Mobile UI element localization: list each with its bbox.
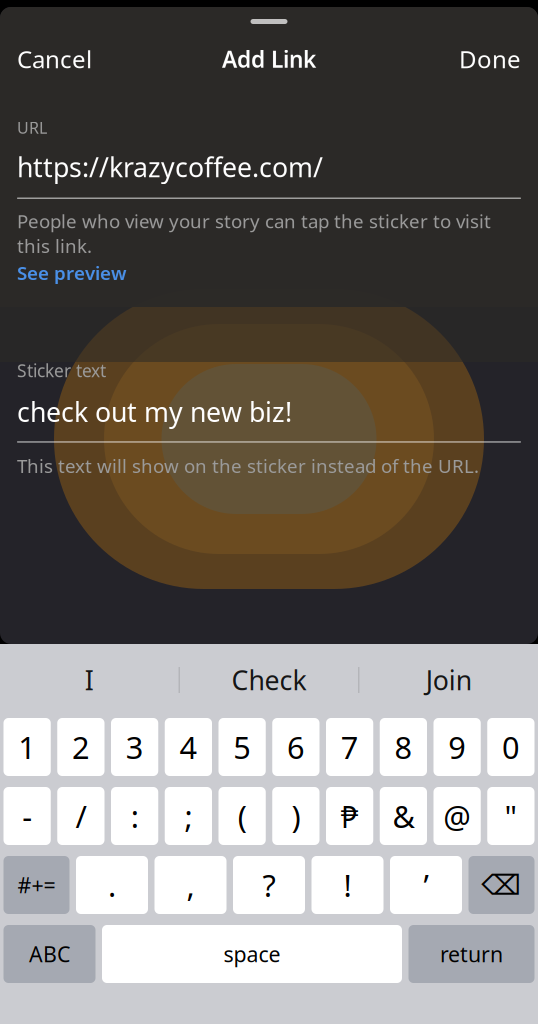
staticText: URL — [17, 117, 47, 138]
button[interactable]: ABC — [3, 925, 95, 983]
staticText: : — [131, 796, 139, 836]
button[interactable]: / — [57, 787, 104, 845]
button[interactable]: 1 — [3, 718, 51, 776]
staticText: ? — [262, 865, 275, 905]
button[interactable]: Join — [359, 644, 538, 716]
staticText: - — [22, 796, 32, 836]
staticText: People who view your story can tap the s… — [17, 209, 491, 258]
button[interactable]: ; — [165, 787, 212, 845]
staticText: ₱ — [341, 796, 359, 836]
staticText: 7 — [341, 727, 359, 767]
staticText: #+= — [17, 871, 55, 899]
staticText: ’ — [423, 865, 428, 905]
button[interactable]: & — [380, 787, 427, 845]
staticText: ⌫ — [481, 869, 521, 901]
button[interactable]: 2 — [57, 718, 104, 776]
staticText: ) — [291, 796, 300, 836]
button[interactable]: return — [408, 925, 534, 983]
staticText: 8 — [394, 727, 412, 767]
button[interactable]: 5 — [218, 718, 266, 776]
button[interactable]: #+= — [3, 856, 69, 914]
staticText: Check — [231, 662, 306, 698]
staticText: space — [223, 940, 280, 968]
staticText: 2 — [72, 727, 90, 767]
staticText: ; — [184, 796, 192, 836]
staticText: ( — [238, 796, 247, 836]
staticText: 9 — [448, 727, 466, 767]
button[interactable]: ’ — [390, 856, 462, 914]
staticText: . — [108, 865, 116, 905]
staticText: 3 — [126, 727, 144, 767]
button[interactable]: : — [111, 787, 158, 845]
button[interactable]: Done — [454, 36, 526, 82]
button[interactable]: 4 — [165, 718, 212, 776]
staticText: check out my new biz! — [17, 394, 292, 429]
button[interactable]: ? — [233, 856, 305, 914]
staticText: ! — [343, 865, 351, 905]
staticText: I — [85, 662, 94, 698]
staticText: 0 — [502, 727, 520, 767]
button[interactable]: . — [76, 856, 148, 914]
button[interactable]: Check — [180, 644, 358, 716]
staticText: See preview — [17, 260, 126, 285]
button[interactable]: 0 — [487, 718, 534, 776]
staticText: Cancel — [17, 43, 92, 75]
button[interactable]: 6 — [272, 718, 319, 776]
staticText: & — [392, 796, 414, 836]
staticText: Join — [426, 662, 472, 698]
button[interactable]: See preview — [17, 258, 126, 287]
staticText: Done — [459, 43, 521, 75]
button[interactable]: 7 — [326, 718, 373, 776]
button[interactable]: 3 — [111, 718, 158, 776]
staticText: This text will show on the sticker inste… — [17, 453, 479, 478]
button[interactable]: ) — [272, 787, 319, 845]
staticText: 6 — [287, 727, 305, 767]
button[interactable]: - — [3, 787, 51, 845]
staticText: " — [504, 796, 517, 836]
staticText: @ — [443, 796, 471, 836]
button[interactable]: ( — [218, 787, 266, 845]
staticText: / — [75, 796, 86, 836]
staticText: , — [186, 865, 194, 905]
button[interactable]: " — [487, 787, 534, 845]
button[interactable]: ₱ — [326, 787, 373, 845]
staticText: 5 — [233, 727, 251, 767]
button[interactable]: 8 — [380, 718, 427, 776]
button[interactable]: Cancel — [12, 36, 97, 82]
staticText: 4 — [179, 727, 197, 767]
button[interactable]: I — [0, 644, 179, 716]
button[interactable]: space — [102, 925, 402, 983]
button[interactable]: @ — [433, 787, 481, 845]
staticText: return — [440, 940, 503, 968]
button[interactable]: Delete — [468, 856, 534, 914]
staticText: 1 — [18, 727, 36, 767]
button[interactable]: ! — [311, 856, 383, 914]
staticText: Add Link — [222, 44, 316, 74]
staticText: Sticker text — [17, 359, 106, 382]
button[interactable]: 9 — [433, 718, 481, 776]
button[interactable]: , — [154, 856, 226, 914]
staticText: ABC — [29, 940, 70, 968]
staticText: https://krazycoffee.com/ — [17, 149, 323, 185]
